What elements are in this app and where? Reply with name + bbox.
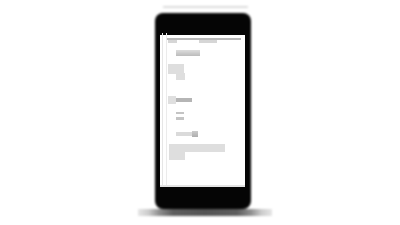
other: Phone device: [155, 13, 251, 209]
